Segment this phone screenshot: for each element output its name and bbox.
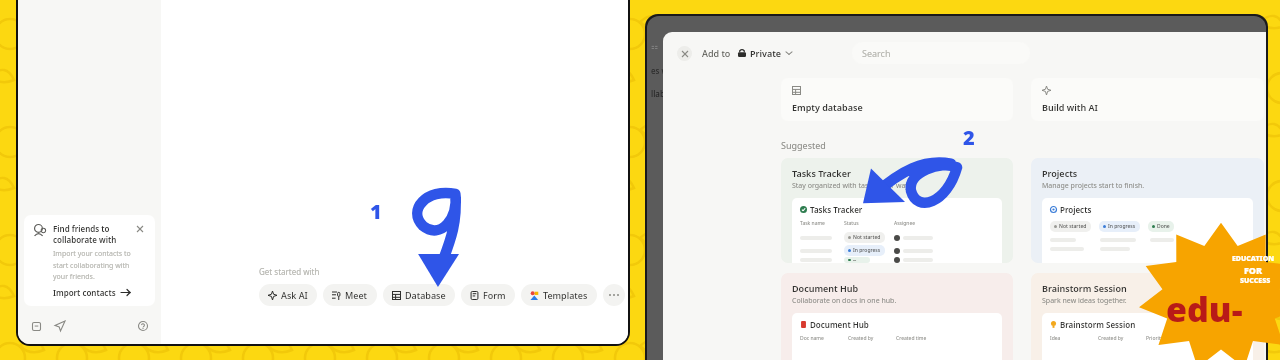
staticText: Tasks Tracker bbox=[810, 204, 863, 215]
staticText: Empty database bbox=[792, 101, 863, 113]
button[interactable]: Dismiss bbox=[134, 223, 146, 235]
staticText: llabo bbox=[651, 88, 670, 99]
staticText: ⚏ bbox=[651, 42, 659, 51]
staticText: Projects bbox=[1060, 204, 1092, 215]
staticText: Created by bbox=[1098, 335, 1146, 342]
button[interactable]: Find friends to collaborate with bbox=[24, 215, 155, 306]
staticText: Tasks Tracker bbox=[792, 167, 851, 179]
staticText: 2 bbox=[963, 124, 975, 151]
button[interactable]: Meet bbox=[323, 284, 377, 306]
staticText: Created by bbox=[848, 335, 896, 342]
button[interactable]: Ask AI bbox=[259, 284, 317, 306]
staticText: In progress bbox=[1108, 223, 1136, 230]
staticText: Build with AI bbox=[1042, 101, 1098, 113]
staticText: Collaborate on docs in one hub. bbox=[792, 296, 897, 306]
button[interactable]: Help bbox=[135, 318, 151, 334]
staticText: Stay organized with tasks, your way. bbox=[792, 181, 911, 191]
button[interactable]: Tasks Tracker bbox=[781, 158, 1013, 263]
staticText: FOR bbox=[1244, 264, 1263, 276]
button[interactable]: Build with AI bbox=[1031, 78, 1264, 121]
staticText: Find friends to collaborate with bbox=[53, 223, 134, 245]
staticText: Search bbox=[862, 47, 891, 59]
staticText: Private bbox=[750, 47, 782, 59]
staticText: edu- bbox=[1166, 286, 1243, 332]
staticText: 1 bbox=[370, 198, 382, 225]
staticText: Assignee bbox=[894, 220, 916, 227]
button[interactable]: More bbox=[603, 284, 625, 306]
staticText: In progress bbox=[853, 247, 881, 254]
staticText: Document Hub bbox=[792, 282, 859, 294]
button[interactable]: Projects bbox=[1031, 158, 1264, 263]
staticText: Brainstorm Session bbox=[1060, 319, 1136, 330]
button[interactable]: Brainstorm Session bbox=[1031, 273, 1264, 360]
staticText: Created time bbox=[896, 335, 927, 342]
staticText: Templates bbox=[543, 289, 588, 301]
button[interactable]: Close bbox=[677, 46, 692, 61]
staticText: Not started bbox=[853, 234, 881, 241]
staticText: Doc name bbox=[800, 335, 848, 342]
button[interactable]: Database bbox=[383, 284, 455, 306]
staticText: Status bbox=[844, 220, 894, 227]
staticText: Spark new ideas together. bbox=[1042, 296, 1127, 306]
staticText: Suggested bbox=[781, 139, 826, 151]
button[interactable]: Templates bbox=[521, 284, 597, 306]
staticText: Task name bbox=[800, 220, 844, 227]
staticText: Import contacts bbox=[53, 287, 116, 298]
staticText: es wi bbox=[651, 65, 671, 76]
staticText: Priority bbox=[1146, 335, 1164, 342]
button[interactable]: Empty database bbox=[781, 78, 1013, 121]
staticText: Not started bbox=[1059, 223, 1087, 230]
staticText: Import your contacts to start collaborat… bbox=[53, 249, 131, 281]
staticText: SUCCESS bbox=[1240, 276, 1271, 286]
button[interactable]: Trash bbox=[28, 318, 44, 334]
staticText: Projects bbox=[1042, 167, 1078, 179]
staticText: Done bbox=[853, 259, 866, 261]
button[interactable]: Document Hub bbox=[781, 273, 1013, 360]
staticText: Form bbox=[483, 289, 506, 301]
staticText: Document Hub bbox=[810, 319, 869, 330]
button[interactable]: Send bbox=[52, 318, 68, 334]
staticText: Ask AI bbox=[281, 289, 308, 301]
staticText: Done bbox=[1157, 223, 1170, 230]
button[interactable]: Form bbox=[461, 284, 515, 306]
staticText: EDUCATION bbox=[1232, 254, 1275, 264]
staticText: Get started with bbox=[259, 266, 320, 277]
staticText: Manage projects start to finish. bbox=[1042, 181, 1145, 191]
staticText: Meet bbox=[345, 289, 368, 301]
staticText: Database bbox=[405, 289, 446, 301]
staticText: Brainstorm Session bbox=[1042, 282, 1127, 294]
staticText: Add to bbox=[702, 47, 731, 59]
staticText: Idea bbox=[1050, 335, 1098, 342]
button[interactable]: Search bbox=[852, 42, 1030, 64]
